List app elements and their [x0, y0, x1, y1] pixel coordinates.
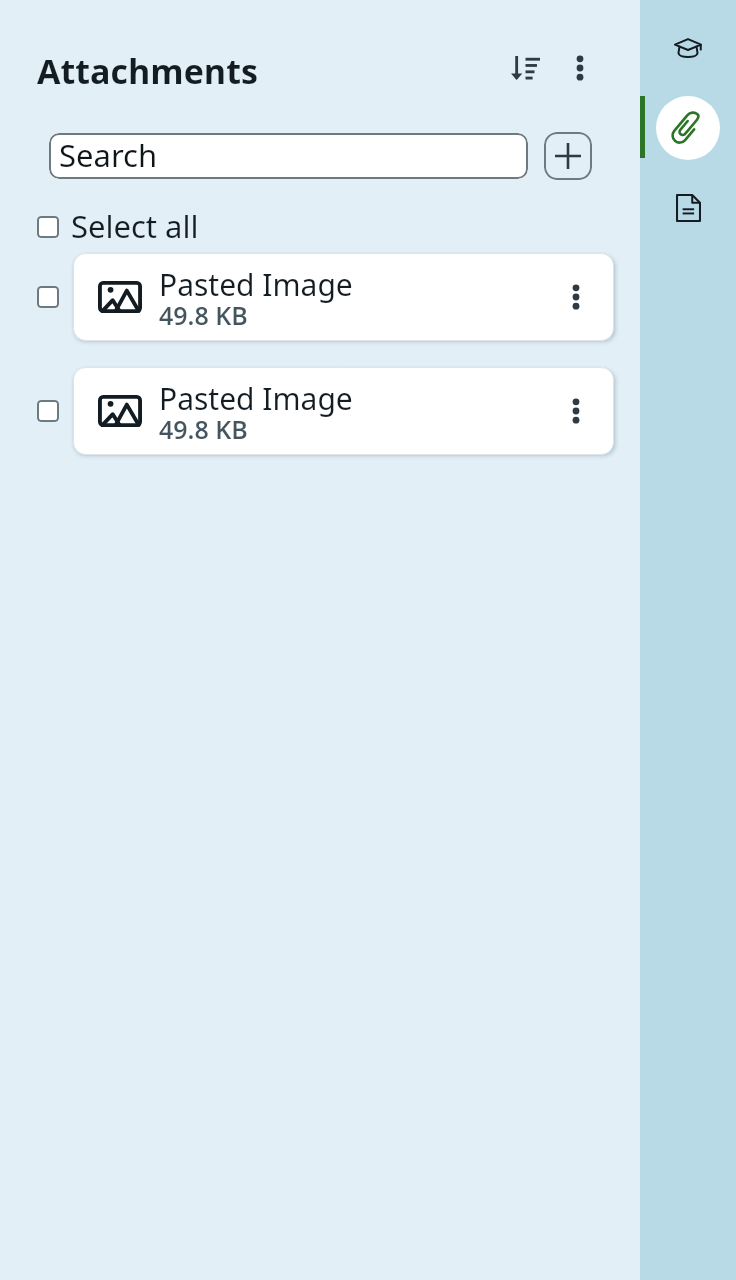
staticText: Select all [71, 205, 199, 247]
button[interactable]: Documents [664, 184, 712, 232]
button[interactable]: Add attachment [544, 132, 592, 180]
button[interactable]: Select item [37, 286, 59, 308]
button[interactable]: Sort [501, 44, 549, 92]
button[interactable]: Item options [549, 384, 603, 438]
button[interactable]: More options [556, 44, 604, 92]
button[interactable]: Attachments [656, 96, 720, 160]
button[interactable]: Pasted Image [73, 253, 614, 341]
button[interactable]: Select all [37, 206, 207, 248]
button[interactable]: Pasted Image [73, 367, 614, 455]
staticText: Pasted Image [159, 264, 353, 305]
staticText: 49.8 KB [159, 298, 248, 332]
staticText: 49.8 KB [159, 412, 248, 446]
staticText: Search [59, 134, 158, 176]
staticText: Attachments [37, 48, 258, 94]
button[interactable]: Item options [549, 270, 603, 324]
button[interactable]: Select item [37, 400, 59, 422]
button[interactable]: Search [49, 133, 528, 179]
staticText: Pasted Image [159, 378, 353, 419]
button[interactable]: Learn [664, 24, 712, 72]
